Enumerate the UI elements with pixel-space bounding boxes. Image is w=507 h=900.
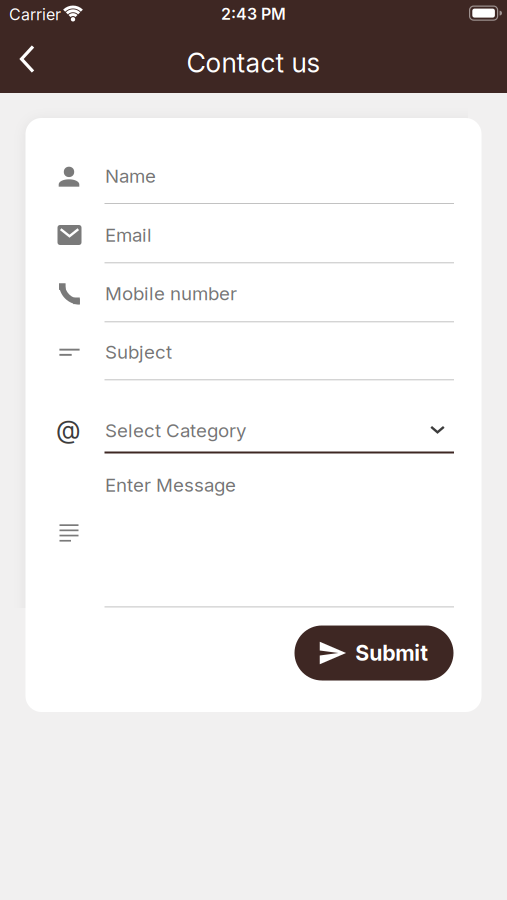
button[interactable]: Select Category [0,0,507,470]
staticText: @ [56,414,81,444]
staticText: Contact us [186,47,320,78]
staticText: Name [105,165,156,187]
staticText: Enter Message [105,474,236,496]
staticText: Mobile number [105,282,237,304]
staticText: Carrier [9,5,61,24]
button[interactable]: Subject [0,0,507,395]
button[interactable]: Email [0,0,507,280]
staticText: Email [105,224,152,246]
button[interactable]: Mobile number [0,0,507,340]
button[interactable]: Name [0,0,507,220]
staticText: Subject [105,341,172,363]
staticText: Select Category [105,419,246,441]
button[interactable]: Submit [294,625,453,680]
button[interactable]: Back [0,0,34,34]
staticText: Submit [355,640,428,666]
button[interactable]: Enter Message [0,0,507,620]
staticText: 2:43 PM [221,4,286,23]
